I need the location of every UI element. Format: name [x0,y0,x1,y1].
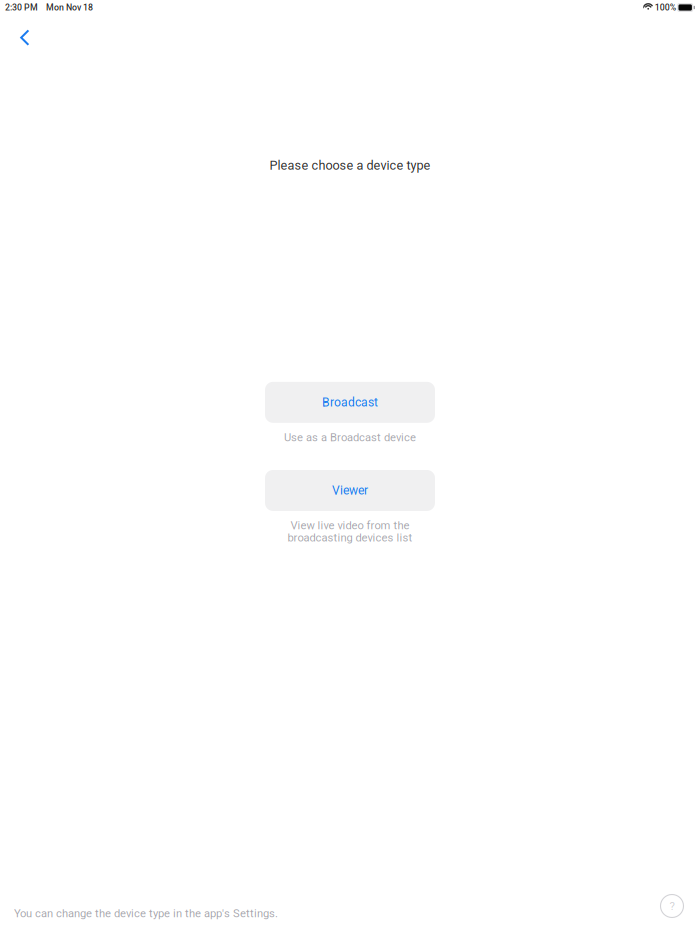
staticText: You can change the device type in the ap… [14,907,278,920]
staticText: Mon Nov 18 [46,2,93,13]
staticText: 100% [655,2,676,13]
button[interactable]: Viewer [265,470,435,511]
button[interactable]: Back [0,8,42,62]
button[interactable]: Help [660,894,684,918]
staticText: View live video from the [290,519,409,532]
staticText: 2:30 PM [5,2,38,13]
staticText: broadcasting devices list [287,531,412,544]
staticText: Use as a Broadcast device [284,431,416,444]
staticText: Please choose a device type [269,158,430,173]
staticText: Broadcast [322,395,378,409]
staticText: Viewer [332,483,368,498]
button[interactable]: Broadcast [265,382,435,423]
staticText: ? [669,899,674,913]
